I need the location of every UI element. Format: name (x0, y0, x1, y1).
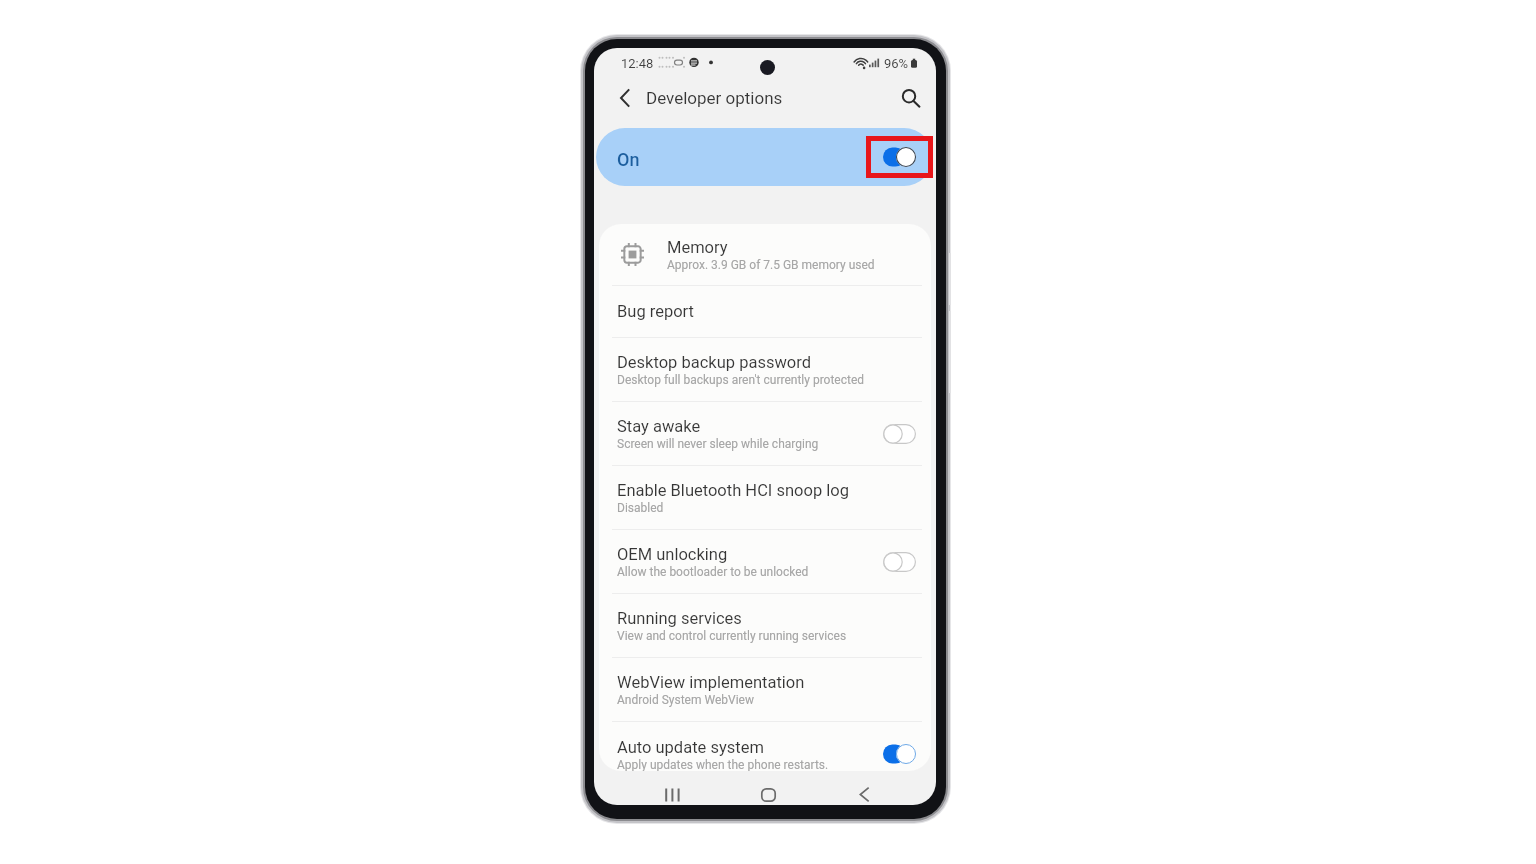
button[interactable]: Back (842, 784, 886, 805)
staticText: Desktop full backups aren't currently pr… (617, 373, 865, 387)
staticText: Android System WebView (617, 693, 754, 707)
button[interactable]: Back (610, 82, 642, 114)
staticText: Bug report (617, 302, 694, 321)
button[interactable]: Memory (599, 224, 931, 285)
staticText: 96% (884, 56, 909, 71)
button[interactable]: Desktop backup password (599, 338, 931, 401)
button[interactable]: Developer options switch (866, 136, 933, 178)
staticText: OEM unlocking (617, 545, 728, 564)
staticText: Approx. 3.9 GB of 7.5 GB memory used (667, 258, 875, 272)
staticText: Auto update system (617, 738, 764, 757)
button[interactable]: Home (746, 784, 790, 805)
button[interactable]: Auto update system (599, 722, 931, 771)
staticText: Apply updates when the phone restarts. (617, 758, 829, 771)
button[interactable]: Auto update system on (883, 744, 916, 764)
staticText: Developer options (646, 88, 783, 108)
staticText: Disabled (617, 501, 664, 515)
button[interactable]: Recents (650, 784, 694, 805)
staticText: Running services (617, 609, 742, 628)
staticText: WebView implementation (617, 673, 805, 692)
staticText: Allow the bootloader to be unlocked (617, 565, 809, 579)
staticText: On (617, 149, 640, 170)
button[interactable]: On (596, 128, 933, 186)
staticText: Memory (667, 238, 728, 257)
button[interactable]: Search (895, 82, 927, 114)
staticText: Screen will never sleep while charging (617, 437, 819, 451)
staticText: 12:48 (621, 56, 654, 71)
staticText: Desktop backup password (617, 353, 811, 372)
staticText: Stay awake (617, 417, 701, 436)
button[interactable]: OEM unlocking off (883, 552, 916, 572)
staticText: View and control currently running servi… (617, 629, 847, 643)
button[interactable]: OEM unlocking (599, 530, 931, 593)
button[interactable]: Stay awake (599, 402, 931, 465)
button[interactable]: Stay awake off (883, 424, 916, 444)
button[interactable]: Enable Bluetooth HCI snoop log (599, 466, 931, 529)
button[interactable]: Bug report (599, 286, 931, 337)
button[interactable]: WebView implementation (599, 658, 931, 721)
staticText: Enable Bluetooth HCI snoop log (617, 481, 849, 500)
button[interactable]: Running services (599, 594, 931, 657)
